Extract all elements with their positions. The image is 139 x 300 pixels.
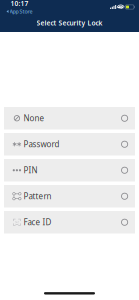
staticText: App Store: [9, 8, 32, 15]
button[interactable]: None: [4, 107, 135, 129]
staticText: PIN: [23, 165, 37, 175]
staticText: 10:17: [10, 0, 28, 8]
staticText: Pattern: [23, 191, 51, 201]
button[interactable]: App Store: [6, 8, 32, 15]
button[interactable]: Password: [4, 133, 135, 155]
button[interactable]: PIN: [4, 159, 135, 181]
staticText: Face ID: [23, 217, 51, 227]
button[interactable]: Face ID: [4, 211, 135, 233]
staticText: Select Security Lock: [36, 19, 102, 27]
button[interactable]: Pattern: [4, 185, 135, 207]
staticText: None: [23, 113, 44, 123]
staticText: Password: [23, 139, 59, 149]
